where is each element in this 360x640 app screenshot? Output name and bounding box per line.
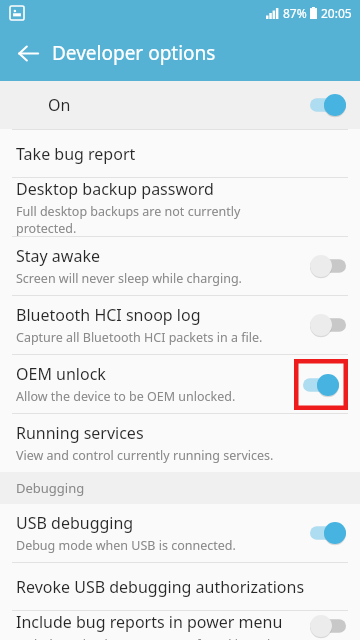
button[interactable]: Desktop backup password	[0, 178, 360, 236]
staticText: Include bug reports in power menu	[16, 611, 283, 633]
staticText: On	[48, 94, 71, 116]
staticText: Allow the device to be OEM unlocked.	[16, 388, 236, 405]
button[interactable]: Include bug reports in power menu	[0, 611, 360, 640]
staticText: OEM unlock	[16, 363, 106, 385]
staticText: Developer options	[52, 40, 216, 66]
button[interactable]: Running services	[0, 414, 360, 472]
staticText: Debug mode when USB is connected.	[16, 537, 236, 554]
staticText: Debugging	[16, 479, 85, 497]
staticText: Take bug report	[16, 143, 136, 165]
button[interactable]: USB debugging	[0, 504, 360, 562]
button[interactable]: Back	[6, 31, 50, 75]
button[interactable]: Revoke USB debugging authorizations	[0, 563, 360, 610]
staticText: Capture all Bluetooth HCI packets in a f…	[16, 329, 263, 346]
staticText: Screen will never sleep while charging.	[16, 270, 242, 287]
staticText: Desktop backup password	[16, 178, 214, 200]
button[interactable]: Take bug report	[0, 130, 360, 177]
staticText: Full desktop backups are not currently p…	[16, 203, 294, 236]
staticText: Stay awake	[16, 245, 100, 267]
button[interactable]: Bluetooth HCI snoop log	[0, 296, 360, 354]
staticText: 20:05	[321, 5, 352, 21]
button[interactable]: On	[0, 81, 360, 129]
staticText: Running services	[16, 422, 144, 444]
staticText: Include option in power menu for taking …	[16, 636, 294, 640]
button[interactable]: Stay awake	[0, 237, 360, 295]
staticText: Bluetooth HCI snoop log	[16, 304, 201, 326]
staticText: 87%	[283, 5, 307, 21]
staticText: USB debugging	[16, 512, 134, 534]
staticText: View and control currently running servi…	[16, 447, 274, 464]
button[interactable]: OEM unlock	[0, 355, 360, 413]
staticText: Revoke USB debugging authorizations	[16, 576, 305, 598]
